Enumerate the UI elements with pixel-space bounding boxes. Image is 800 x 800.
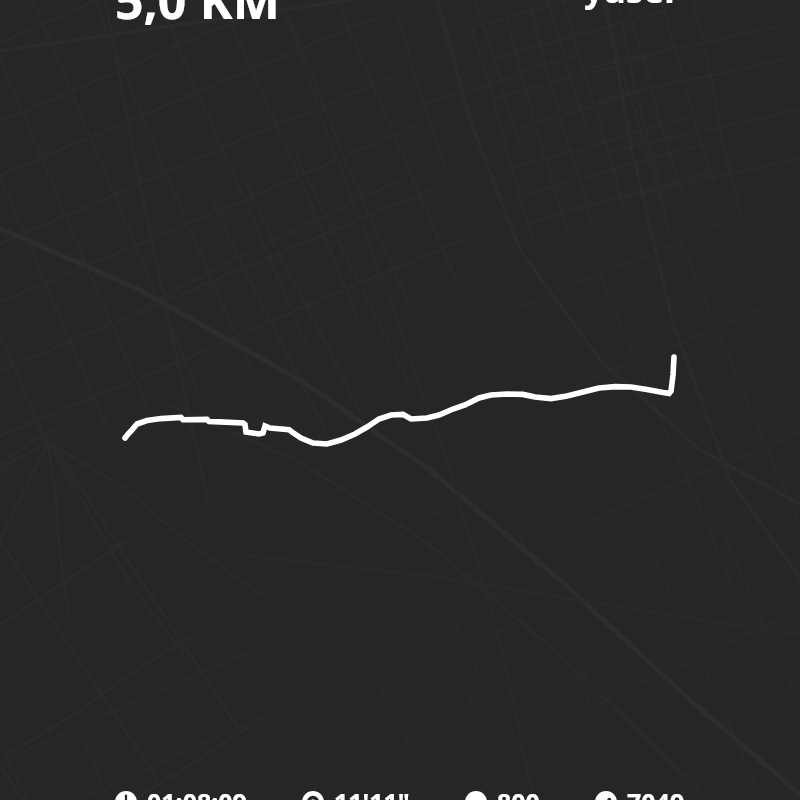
button[interactable]: 800 calories bbox=[465, 785, 540, 800]
other: Activity route on map bbox=[0, 0, 800, 800]
button[interactable]: user bbox=[603, 0, 680, 14]
staticText: 800 bbox=[497, 785, 540, 800]
button[interactable]: 5,0 KM bbox=[115, 0, 280, 34]
button[interactable]: Duration 01:08:09 bbox=[115, 785, 247, 800]
staticText: y bbox=[584, 0, 604, 12]
staticText: 7049 bbox=[627, 785, 685, 800]
staticText: 11'11" bbox=[334, 785, 410, 800]
button[interactable]: 7049 steps bbox=[595, 785, 685, 800]
staticText: 01:08:09 bbox=[147, 785, 247, 800]
button[interactable]: Average pace 11'11" per km bbox=[302, 785, 410, 800]
